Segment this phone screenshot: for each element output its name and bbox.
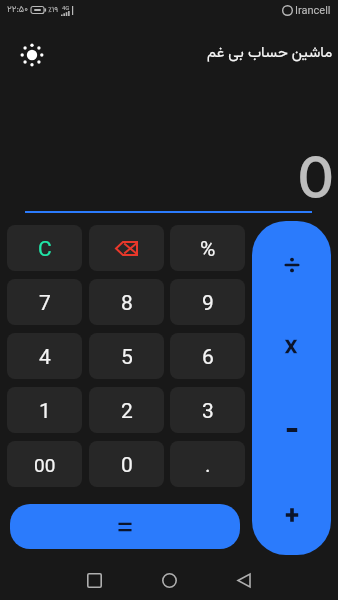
staticText: 8 xyxy=(121,291,133,316)
button[interactable]: 9 xyxy=(170,279,245,325)
button[interactable]: 6 xyxy=(170,333,245,379)
button[interactable]: 00 xyxy=(7,441,82,487)
button[interactable]: 7 xyxy=(7,279,82,325)
staticText: 7 xyxy=(39,291,51,316)
staticText: Irancell xyxy=(295,4,331,17)
button[interactable]: Recent apps xyxy=(76,562,113,598)
button[interactable]: Home xyxy=(151,562,188,598)
staticText: C xyxy=(38,237,52,262)
staticText: 5 xyxy=(121,345,133,370)
staticText: ٪۱۹ xyxy=(48,4,59,17)
staticText: 3 xyxy=(202,399,214,424)
button[interactable]: Divide xyxy=(252,221,331,310)
button[interactable]: Subtract xyxy=(252,385,331,475)
staticText: 4 xyxy=(39,345,51,370)
button[interactable]: 5 xyxy=(89,333,164,379)
staticText: % xyxy=(200,237,216,262)
staticText: 0 xyxy=(297,142,335,212)
button[interactable]: 4 xyxy=(7,333,82,379)
staticText: X xyxy=(285,335,298,357)
staticText: 6 xyxy=(202,345,214,370)
staticText: 00 xyxy=(34,454,56,476)
staticText: 0 xyxy=(121,453,133,478)
button[interactable]: Backspace xyxy=(89,225,164,271)
button[interactable]: Multiply xyxy=(252,301,331,391)
button[interactable]: 2 xyxy=(89,387,164,433)
other: Backspace xyxy=(115,241,138,256)
button[interactable]: . xyxy=(170,441,245,487)
staticText: 1 xyxy=(39,399,51,424)
staticText: 4G xyxy=(62,4,70,11)
button[interactable]: Add xyxy=(252,470,331,555)
button[interactable]: 3 xyxy=(170,387,245,433)
button[interactable]: % xyxy=(170,225,245,271)
button[interactable]: Toggle theme xyxy=(14,37,50,73)
button[interactable]: Back xyxy=(225,562,262,598)
staticText: 2 xyxy=(121,399,133,424)
staticText: 9 xyxy=(202,291,214,316)
staticText: . xyxy=(205,453,211,478)
button[interactable]: Equals xyxy=(10,504,240,549)
button[interactable]: 8 xyxy=(89,279,164,325)
button[interactable]: C xyxy=(7,225,82,271)
button[interactable]: 1 xyxy=(7,387,82,433)
staticText: ۲۲:۵۰ xyxy=(7,3,28,17)
button[interactable]: 0 xyxy=(89,441,164,487)
staticText: ماشین حساب بی غم xyxy=(207,42,333,65)
